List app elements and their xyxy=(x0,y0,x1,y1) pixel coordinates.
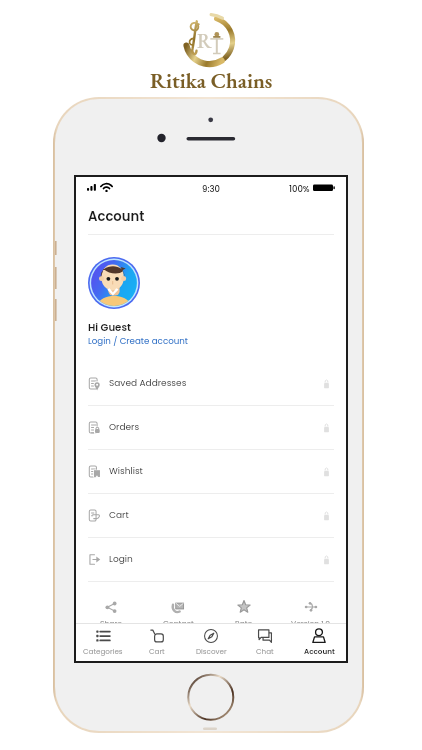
staticText: Wishlist xyxy=(109,465,143,478)
staticText: Rate xyxy=(235,618,253,629)
staticText: Saved Addresses xyxy=(109,377,187,390)
button[interactable]: Login xyxy=(76,538,346,582)
button[interactable]: Orders xyxy=(76,406,346,450)
staticText: Account xyxy=(88,207,145,225)
button[interactable]: Wishlist xyxy=(76,450,346,494)
button[interactable]: Saved Addresses xyxy=(76,362,346,406)
staticText: Cart xyxy=(149,646,165,656)
button[interactable]: Share xyxy=(80,600,142,629)
button[interactable]: Contact xyxy=(147,600,209,629)
staticText: Share xyxy=(100,618,122,629)
staticText: Contact xyxy=(163,618,194,629)
button[interactable]: Discover xyxy=(184,624,238,661)
button[interactable]: Rate xyxy=(213,600,275,629)
button[interactable]: Cart xyxy=(76,494,346,538)
staticText: Hi Guest xyxy=(88,320,131,334)
staticText: R xyxy=(197,28,212,54)
staticText: 9:30 xyxy=(202,183,220,195)
staticText: Discover xyxy=(196,646,227,656)
staticText: 100% xyxy=(289,183,310,195)
staticText: Login xyxy=(109,553,133,566)
button[interactable]: Cart xyxy=(130,624,184,661)
button[interactable]: Chat xyxy=(238,624,292,661)
staticText: Cart xyxy=(109,509,129,522)
button[interactable]: Version 1.0 xyxy=(280,600,342,629)
staticText: Orders xyxy=(109,421,140,434)
button[interactable]: Categories xyxy=(76,624,130,661)
button[interactable]: Login / Create account xyxy=(88,335,188,347)
staticText: Account xyxy=(304,646,335,656)
staticText: Ritika Chains xyxy=(150,66,273,94)
button[interactable]: Account xyxy=(292,624,346,661)
staticText: Chat xyxy=(256,646,274,656)
staticText: Version 1.0 xyxy=(291,618,331,629)
staticText: Categories xyxy=(83,646,123,656)
